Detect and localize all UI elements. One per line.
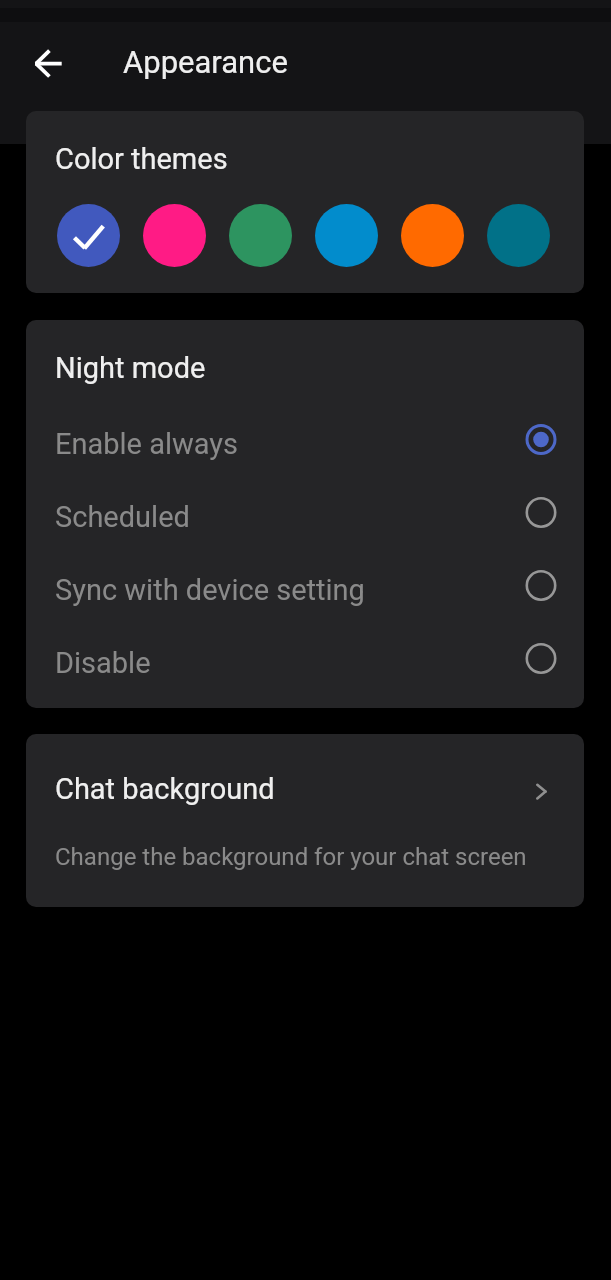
button[interactable]: Theme colour	[143, 204, 206, 267]
button[interactable]: Disable	[26, 622, 584, 695]
staticText: Night mode	[55, 351, 206, 385]
button[interactable]: Enable always	[26, 403, 584, 476]
staticText: Enable always	[55, 427, 239, 461]
button[interactable]: Back	[21, 37, 73, 89]
staticText: Appearance	[123, 44, 288, 80]
button[interactable]: Theme colour	[487, 204, 550, 267]
button[interactable]: Theme colour	[57, 204, 120, 267]
staticText: Scheduled	[55, 500, 190, 534]
button[interactable]: Theme colour	[315, 204, 378, 267]
button[interactable]: Theme colour	[401, 204, 464, 267]
button[interactable]: Chat background	[26, 734, 584, 907]
button[interactable]: Sync with device setting	[26, 549, 584, 622]
staticText: Sync with device setting	[55, 573, 365, 607]
staticText: Color themes	[55, 142, 228, 176]
button[interactable]: Theme colour	[229, 204, 292, 267]
staticText: Disable	[55, 646, 151, 680]
staticText: Change the background for your chat scre…	[55, 843, 527, 871]
button[interactable]: Scheduled	[26, 476, 584, 549]
staticText: Chat background	[55, 772, 275, 806]
